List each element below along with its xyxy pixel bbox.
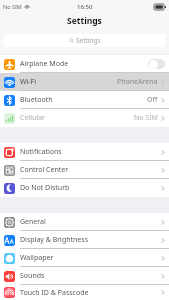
staticText: No SIM: [134, 113, 158, 123]
button[interactable]: Settings: [4, 34, 165, 47]
staticText: Wi-Fi: [20, 77, 37, 87]
button[interactable]: Airplane Mode toggle, off: [148, 59, 165, 69]
staticText: Notifications: [20, 147, 62, 157]
staticText: Touch ID & Passcode: [20, 288, 89, 298]
button[interactable]: Wallpaper: [0, 249, 169, 267]
button[interactable]: Do Not Disturb: [0, 179, 169, 197]
button[interactable]: Sounds: [0, 267, 169, 285]
staticText: Sounds: [20, 271, 45, 281]
button[interactable]: Bluetooth: [0, 91, 169, 109]
staticText: Cellular: [20, 113, 45, 123]
staticText: General: [20, 217, 46, 227]
staticText: Wallpaper: [20, 253, 54, 263]
button[interactable]: General: [0, 213, 169, 231]
button[interactable]: Airplane Mode: [0, 55, 169, 73]
staticText: Off: [147, 95, 158, 105]
staticText: Control Center: [20, 165, 69, 175]
staticText: Airplane Mode: [20, 59, 69, 69]
staticText: 16:50: [77, 3, 93, 11]
button[interactable]: Cellular: [0, 109, 169, 127]
staticText: Do Not Disturb: [20, 183, 70, 193]
button[interactable]: Touch ID & Passcode: [0, 285, 169, 300]
staticText: No SIM: [3, 3, 22, 10]
staticText: Bluetooth: [20, 95, 53, 105]
button[interactable]: Notifications: [0, 143, 169, 161]
button[interactable]: Display & Brightness: [0, 231, 169, 249]
staticText: Display & Brightness: [20, 235, 89, 245]
button[interactable]: Wi-Fi: [0, 73, 169, 91]
staticText: Settings: [67, 15, 102, 27]
staticText: Settings: [76, 36, 101, 45]
button[interactable]: Control Center: [0, 161, 169, 179]
staticText: PhoneArena: [117, 77, 158, 87]
